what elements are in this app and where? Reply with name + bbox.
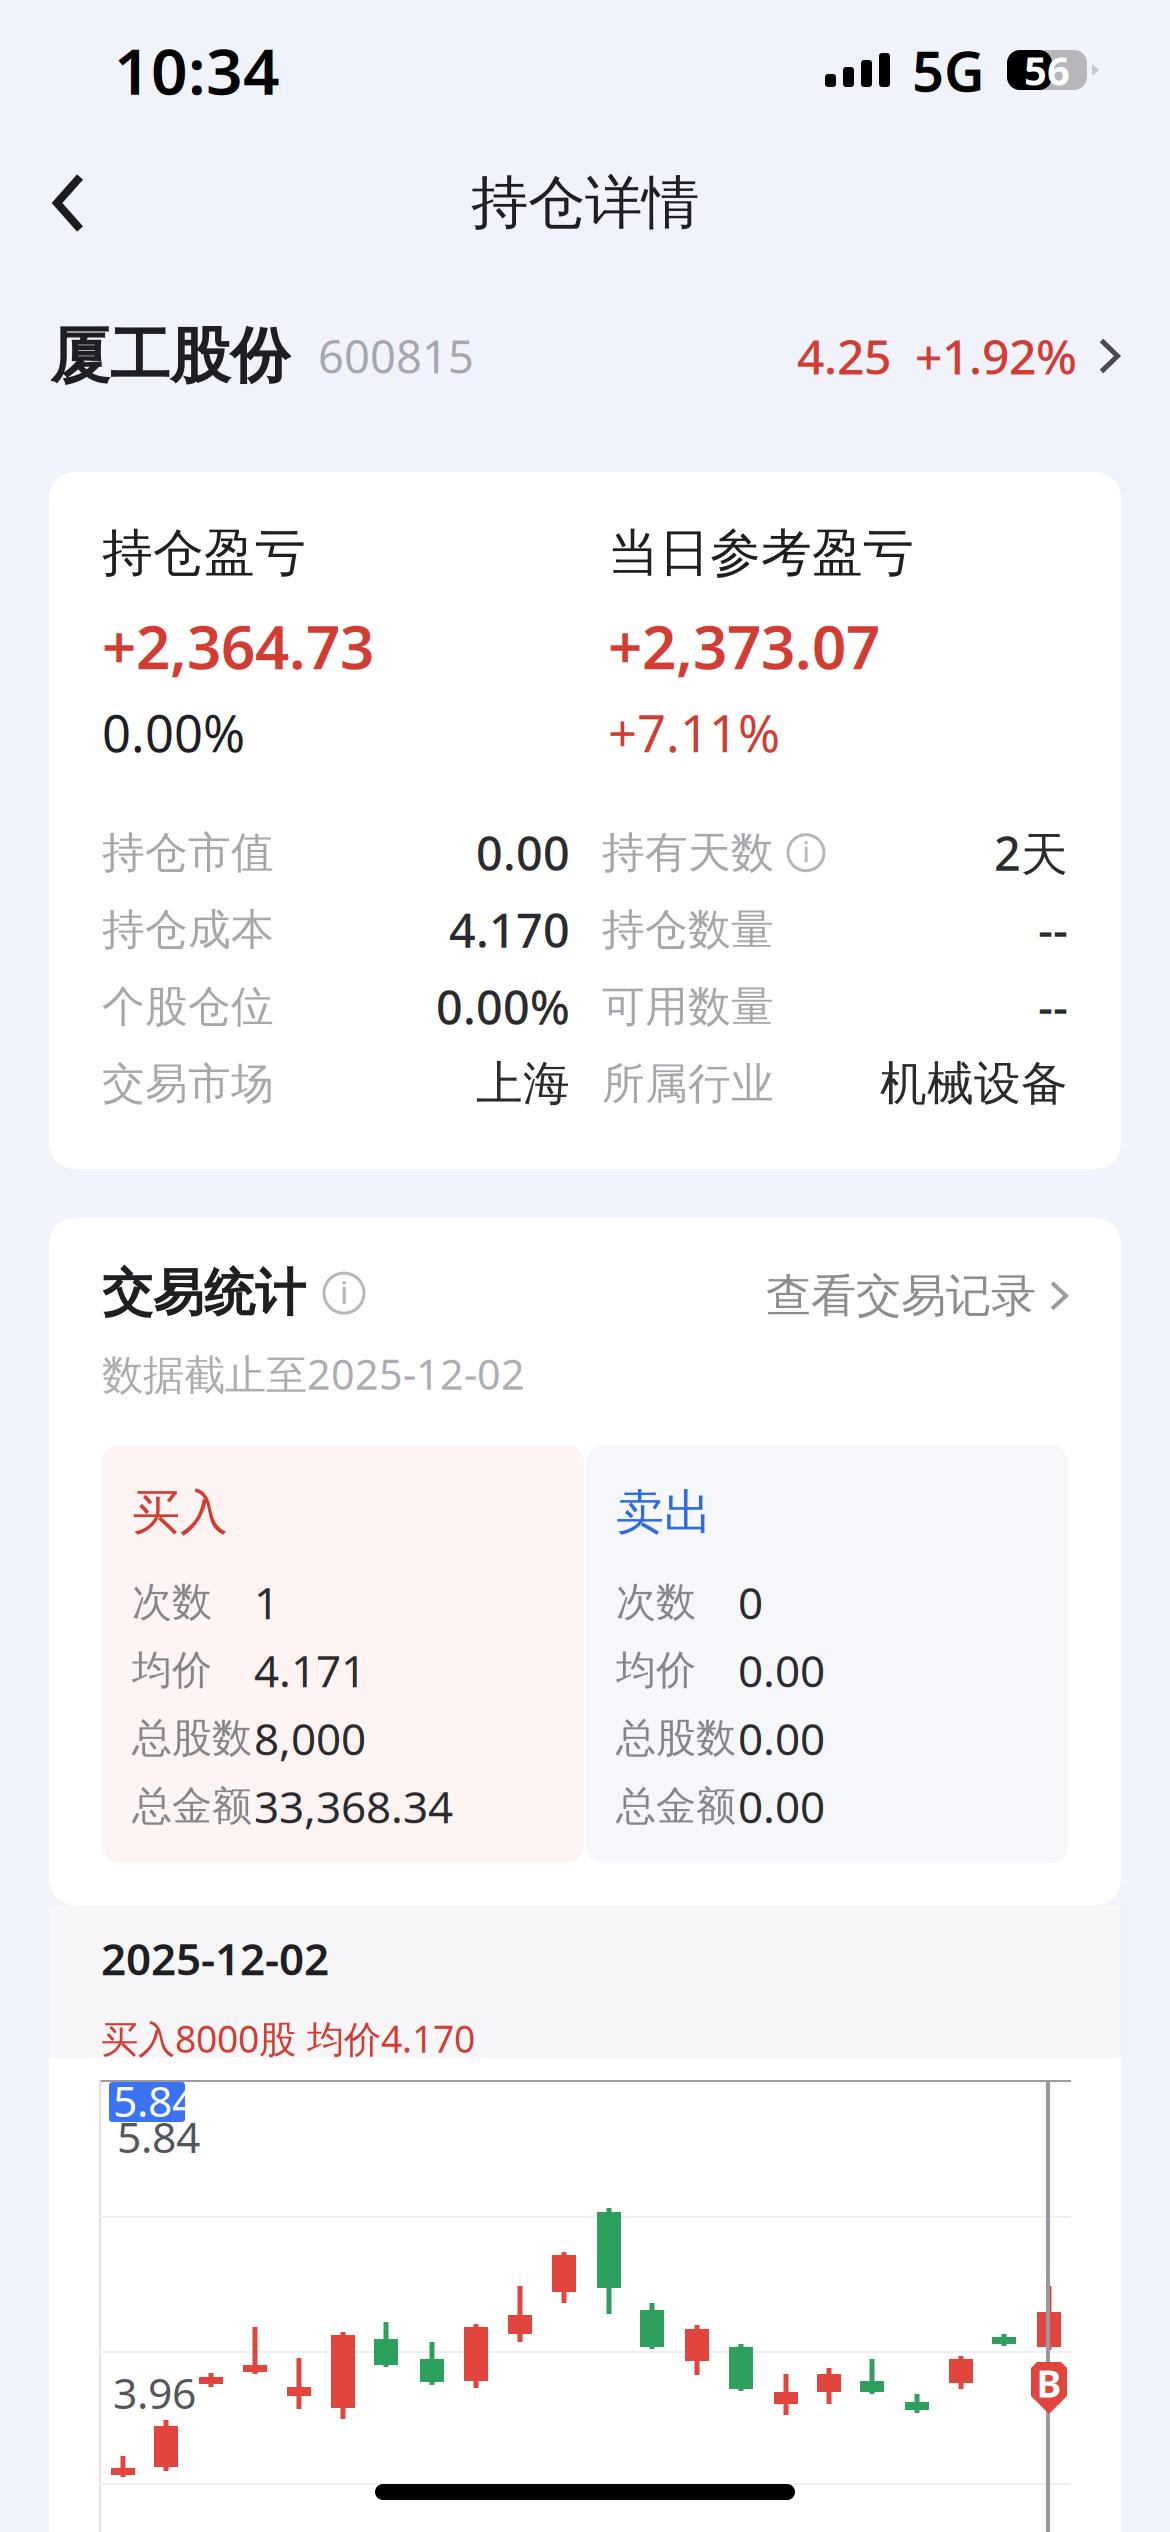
staticText: 数据截止至2025-12-02: [102, 1346, 525, 1401]
staticText: 0.00%: [436, 976, 570, 1038]
button[interactable]: 查看交易记录: [766, 1262, 1068, 1324]
staticText: 查看交易记录: [766, 1268, 1036, 1324]
staticText: 总金额: [132, 1781, 252, 1831]
staticText: 2天: [994, 822, 1068, 884]
staticText: 个股仓位: [102, 980, 274, 1033]
staticText: +7.11%: [608, 699, 780, 766]
staticText: 买入8000股 均价4.170: [101, 2013, 475, 2063]
staticText: 8,000: [254, 1709, 366, 1767]
staticText: 总股数: [132, 1713, 252, 1763]
staticText: 0.00: [476, 822, 570, 884]
staticText: 4.25: [797, 324, 891, 388]
staticText: 均价: [132, 1645, 212, 1695]
staticText: 0.00: [738, 1641, 825, 1699]
staticText: 厦工股份: [50, 319, 290, 393]
staticText: --: [1038, 976, 1068, 1038]
staticText: 总金额: [616, 1781, 736, 1831]
staticText: 4.170: [449, 899, 570, 961]
staticText: 卖出: [616, 1483, 712, 1542]
staticText: 交易统计: [102, 1262, 306, 1324]
staticText: 所属行业: [602, 1057, 774, 1110]
staticText: 买入: [132, 1483, 228, 1542]
staticText: 当日参考盈亏: [608, 522, 914, 584]
staticText: 均价: [616, 1645, 696, 1695]
button[interactable]: 厦工股份: [0, 266, 1170, 446]
staticText: +2,364.73: [102, 606, 374, 686]
staticText: --: [1038, 899, 1068, 961]
staticText: 0.00: [738, 1777, 825, 1835]
staticText: 600815: [318, 326, 474, 386]
staticText: 次数: [616, 1577, 696, 1627]
staticText: 5.84: [117, 2108, 200, 2165]
staticText: 持仓数量: [602, 903, 774, 956]
staticText: +2,373.07: [608, 606, 880, 686]
staticText: 次数: [132, 1577, 212, 1627]
staticText: 5.84: [113, 2072, 196, 2129]
staticText: 持仓市值: [102, 826, 274, 879]
staticText: 1: [254, 1573, 279, 1631]
staticText: +1.92%: [915, 324, 1077, 388]
staticText: B: [1036, 2358, 1061, 2408]
staticText: 交易市场: [102, 1057, 274, 1110]
staticText: 上海: [476, 1055, 570, 1112]
staticText: 5G: [912, 33, 985, 107]
staticText: i: [340, 1272, 348, 1312]
staticText: 3.96: [113, 2364, 196, 2421]
staticText: 总股数: [616, 1713, 736, 1763]
staticText: 0.00: [738, 1709, 825, 1767]
staticText: 0: [738, 1573, 763, 1631]
staticText: 持仓成本: [102, 903, 274, 956]
staticText: 56: [1024, 43, 1070, 96]
staticText: 持有天数: [602, 826, 774, 879]
staticText: i: [802, 834, 809, 869]
staticText: 0.00%: [102, 699, 245, 766]
button[interactable]: 返回: [0, 145, 129, 261]
staticText: 4.171: [254, 1641, 366, 1699]
staticText: 可用数量: [602, 980, 774, 1033]
staticText: 持仓盈亏: [102, 522, 306, 584]
staticText: 10:34: [114, 27, 280, 112]
staticText: 33,368.34: [254, 1777, 453, 1835]
staticText: 持仓详情: [471, 168, 699, 238]
staticText: 2025-12-02: [101, 1929, 329, 1987]
staticText: 机械设备: [880, 1055, 1068, 1112]
